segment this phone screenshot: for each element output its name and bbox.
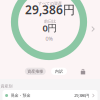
button[interactable]: 詳細 — [91, 26, 95, 32]
staticText: 0円 — [42, 22, 56, 34]
button[interactable]: 資産推移 — [25, 68, 46, 75]
staticText: 資産推移 — [27, 69, 43, 74]
staticText: 0% — [45, 35, 52, 42]
button[interactable]: 金額を隠す — [80, 68, 86, 74]
button[interactable]: 内訳 — [51, 68, 67, 75]
staticText: 内訳 — [55, 69, 63, 74]
staticText: 前日比 — [44, 19, 56, 24]
staticText: 29,386円 — [74, 93, 89, 98]
staticText: 資産別 — [1, 84, 13, 88]
staticText: 現金・預金 — [10, 93, 30, 98]
staticText: すべての資産 — [38, 1, 62, 6]
button[interactable]: 現金・預金 — [2, 90, 97, 100]
staticText: 29,386円 — [25, 2, 75, 17]
